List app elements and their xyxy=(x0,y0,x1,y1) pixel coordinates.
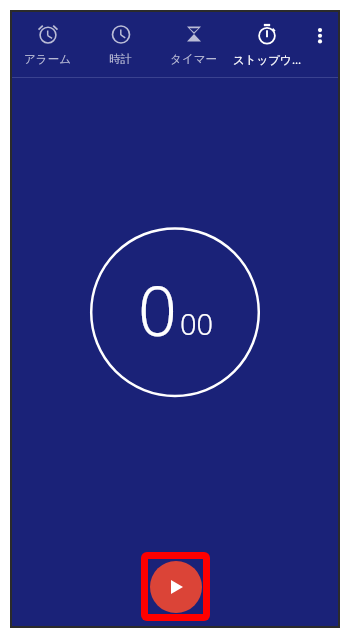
button[interactable]: タイマー xyxy=(157,12,230,77)
staticText: 時計 xyxy=(109,52,132,66)
staticText: ストップウ… xyxy=(233,52,301,68)
button[interactable]: Start stopwatch xyxy=(148,559,203,614)
button[interactable]: アラーム xyxy=(11,12,84,77)
staticText: タイマー xyxy=(170,52,217,66)
button[interactable]: 時計 xyxy=(84,12,157,77)
button[interactable]: More options xyxy=(303,12,337,77)
staticText: 00 xyxy=(180,304,214,343)
staticText: アラーム xyxy=(24,52,71,66)
staticText: 0 xyxy=(138,263,177,356)
button[interactable]: ストップウ… xyxy=(230,12,303,77)
